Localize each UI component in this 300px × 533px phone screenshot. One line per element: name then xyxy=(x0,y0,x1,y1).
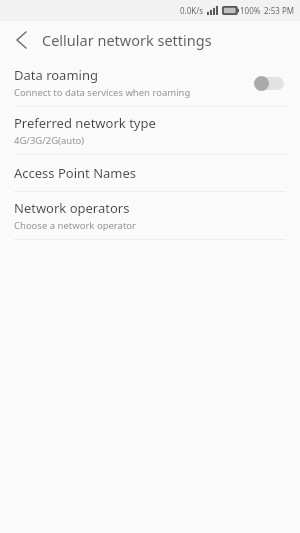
button[interactable]: Data roaming xyxy=(0,59,300,106)
staticText: 0.0K/s xyxy=(180,5,204,16)
staticText: Network operators xyxy=(14,199,130,217)
button[interactable]: Back xyxy=(0,21,42,59)
staticText: Connect to data services when roaming xyxy=(14,86,191,99)
staticText: Access Point Names xyxy=(14,164,137,182)
staticText: Choose a network operator xyxy=(14,219,136,232)
staticText: Preferred network type xyxy=(14,114,156,132)
button[interactable]: Network operators xyxy=(0,192,300,239)
button[interactable]: Preferred network type xyxy=(0,107,300,154)
staticText: Cellular network settings xyxy=(42,30,290,50)
button[interactable]: Data roaming toggle xyxy=(254,74,286,92)
button[interactable]: Access Point Names xyxy=(0,155,300,191)
staticText: 100% xyxy=(240,5,261,16)
staticText: 2:53 PM xyxy=(264,5,295,16)
staticText: Data roaming xyxy=(14,66,98,84)
staticText: 4G/3G/2G(auto) xyxy=(14,134,85,147)
